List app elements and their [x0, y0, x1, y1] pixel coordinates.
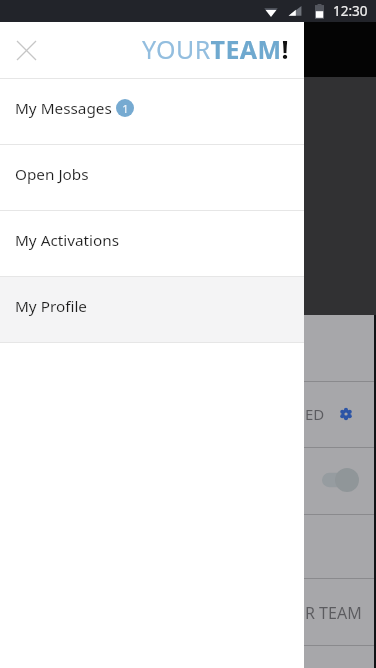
staticText: My Activations — [15, 230, 120, 251]
staticText: ED — [305, 404, 325, 424]
button[interactable]: Toggle notifications — [312, 462, 368, 498]
button[interactable]: Open Jobs — [0, 145, 304, 210]
button[interactable]: My Activations — [0, 211, 304, 276]
staticText: 12:30 — [333, 2, 368, 20]
button[interactable]: My Profile — [0, 277, 304, 342]
staticText: YOURTEAM! — [142, 32, 289, 66]
button[interactable]: My Messages — [0, 79, 304, 144]
button[interactable]: Settings — [334, 402, 358, 426]
staticText: Open Jobs — [15, 164, 89, 185]
staticText: My Messages — [15, 98, 112, 119]
staticText: My Profile — [15, 296, 87, 317]
button[interactable]: Close drawer — [10, 34, 42, 66]
staticText: 1 — [122, 101, 129, 116]
staticText: R TEAM — [305, 602, 362, 624]
